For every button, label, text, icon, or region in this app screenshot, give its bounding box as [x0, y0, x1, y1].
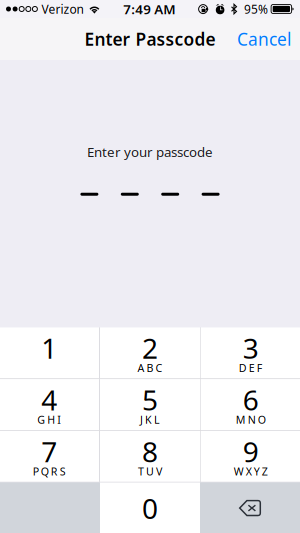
button[interactable]: Delete — [200, 482, 300, 533]
button[interactable]: 6 — [201, 379, 300, 430]
button[interactable]: 9 — [201, 431, 300, 482]
button[interactable]: 7 — [0, 431, 99, 482]
button[interactable]: 2 — [100, 327, 200, 378]
staticText: 9 — [243, 433, 259, 470]
staticText: G H I — [37, 413, 61, 427]
button[interactable]: 0 — [100, 482, 200, 533]
staticText: T U V — [138, 464, 162, 478]
staticText: 7:49 AM — [123, 0, 175, 18]
staticText: 95% — [244, 1, 268, 17]
staticText: J K L — [140, 413, 160, 427]
staticText: Enter your passcode — [87, 143, 213, 161]
staticText: 3 — [243, 329, 259, 367]
staticText: 0 — [142, 489, 158, 527]
staticText: 8 — [142, 433, 158, 470]
button[interactable]: 5 — [100, 379, 200, 430]
staticText: Enter Passcode — [84, 27, 215, 50]
staticText: 5 — [142, 381, 158, 418]
staticText: 2 — [142, 329, 158, 367]
staticText: Verizon — [41, 1, 83, 17]
staticText: 7 — [41, 433, 57, 470]
button[interactable]: 3 — [201, 327, 300, 378]
button[interactable]: 4 — [0, 379, 99, 430]
staticText: P Q R S — [33, 464, 66, 478]
staticText: 6 — [243, 381, 259, 418]
staticText: M N O — [236, 413, 266, 427]
staticText: 1 — [41, 329, 57, 367]
staticText: 4 — [41, 381, 57, 418]
staticText: D E F — [239, 361, 263, 375]
button[interactable]: 8 — [100, 431, 200, 482]
staticText: W X Y Z — [234, 464, 268, 478]
button[interactable]: Cancel — [225, 16, 300, 61]
staticText: Cancel — [237, 27, 291, 50]
staticText: A B C — [137, 361, 162, 375]
button[interactable]: 1 — [0, 327, 99, 378]
